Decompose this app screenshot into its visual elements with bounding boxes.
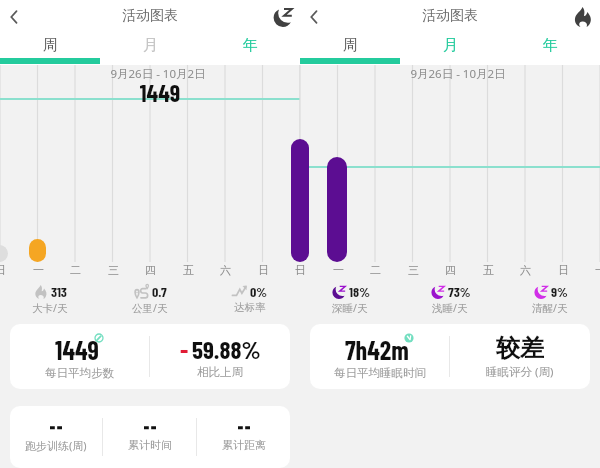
button[interactable]: 周 <box>0 33 100 58</box>
staticText: 大卡/天 <box>32 301 68 315</box>
staticText: 周 <box>43 36 58 55</box>
staticText: 日 <box>295 263 306 277</box>
button[interactable]: 0% <box>200 283 300 314</box>
button[interactable]: Activity mode <box>570 4 596 30</box>
staticText: 三 <box>108 263 119 277</box>
staticText: 五 <box>483 263 494 277</box>
staticText: 0% <box>250 283 268 300</box>
staticText: 三 <box>408 263 419 277</box>
staticText: 四 <box>145 263 156 277</box>
staticText: 0.7 <box>152 283 167 300</box>
staticText: 9月26日 - 10月2日 <box>308 66 600 82</box>
button[interactable]: 年 <box>500 33 600 58</box>
staticText: 7h42m <box>345 334 409 365</box>
staticText: 六 <box>220 263 231 277</box>
staticText: 月 <box>143 36 158 55</box>
staticText: 1449 <box>55 334 99 365</box>
staticText: 跑步训练(周) <box>25 438 87 453</box>
staticText: 1449 <box>10 78 310 107</box>
staticText: 73% <box>448 283 471 300</box>
button[interactable]: 9% <box>500 283 600 315</box>
staticText: 周 <box>343 36 358 55</box>
staticText: 累计时间 <box>128 438 172 452</box>
button[interactable]: 18% <box>300 283 400 315</box>
button[interactable]: 月 <box>400 33 500 58</box>
button[interactable]: 1449 <box>10 324 290 389</box>
button[interactable]: 周 <box>300 33 400 58</box>
staticText: 9月26日 - 10月2日 <box>8 66 308 82</box>
staticText: 六 <box>520 263 531 277</box>
staticText: 公里/天 <box>132 301 168 315</box>
staticText: 活动图表 <box>122 7 178 25</box>
staticText: 18% <box>349 283 370 300</box>
staticText: 每日平均步数 <box>45 366 114 380</box>
staticText: 睡眠评分 (周) <box>486 364 554 380</box>
staticText: 月 <box>443 36 458 55</box>
staticText: 达标率 <box>234 301 266 314</box>
button[interactable]: 年 <box>200 33 300 58</box>
staticText: 59.88% <box>192 334 261 364</box>
button[interactable]: Sleep mode <box>270 4 296 30</box>
staticText: - <box>180 334 189 364</box>
staticText: 清醒/天 <box>532 301 568 315</box>
staticText: 二 <box>70 263 81 277</box>
staticText: 一 <box>595 263 600 277</box>
staticText: 一 <box>295 263 306 277</box>
staticText: 浅睡/天 <box>432 301 468 315</box>
staticText: 相比上周 <box>197 365 243 379</box>
button[interactable]: 73% <box>400 283 500 315</box>
button[interactable]: 跑步训练(周) <box>10 406 290 468</box>
staticText: 二 <box>370 263 381 277</box>
button[interactable]: Back <box>302 5 326 29</box>
button[interactable]: 7h42m <box>310 324 590 389</box>
staticText: 年 <box>543 36 558 55</box>
button[interactable]: 313 <box>0 283 100 315</box>
staticText: 活动图表 <box>422 7 478 25</box>
staticText: 较差 <box>496 333 544 363</box>
button[interactable]: 0.7 <box>100 283 200 315</box>
staticText: 9% <box>551 283 568 300</box>
staticText: 日 <box>558 263 569 277</box>
staticText: 深睡/天 <box>332 301 368 315</box>
staticText: 313 <box>51 283 67 300</box>
staticText: 累计距离 <box>222 438 266 452</box>
button[interactable]: Back <box>2 5 26 29</box>
staticText: 四 <box>445 263 456 277</box>
staticText: 日 <box>258 263 269 277</box>
staticText: 一 <box>333 263 344 277</box>
staticText: 年 <box>243 36 258 55</box>
button[interactable]: 月 <box>100 33 200 58</box>
staticText: 每日平均睡眠时间 <box>334 366 426 380</box>
staticText: 五 <box>183 263 194 277</box>
staticText: 一 <box>33 263 44 277</box>
staticText: 日 <box>0 263 6 277</box>
